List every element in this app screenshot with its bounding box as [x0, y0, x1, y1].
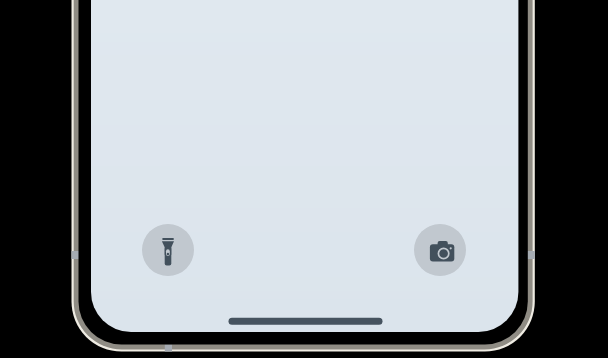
button[interactable] — [414, 224, 466, 276]
button[interactable] — [142, 224, 194, 276]
